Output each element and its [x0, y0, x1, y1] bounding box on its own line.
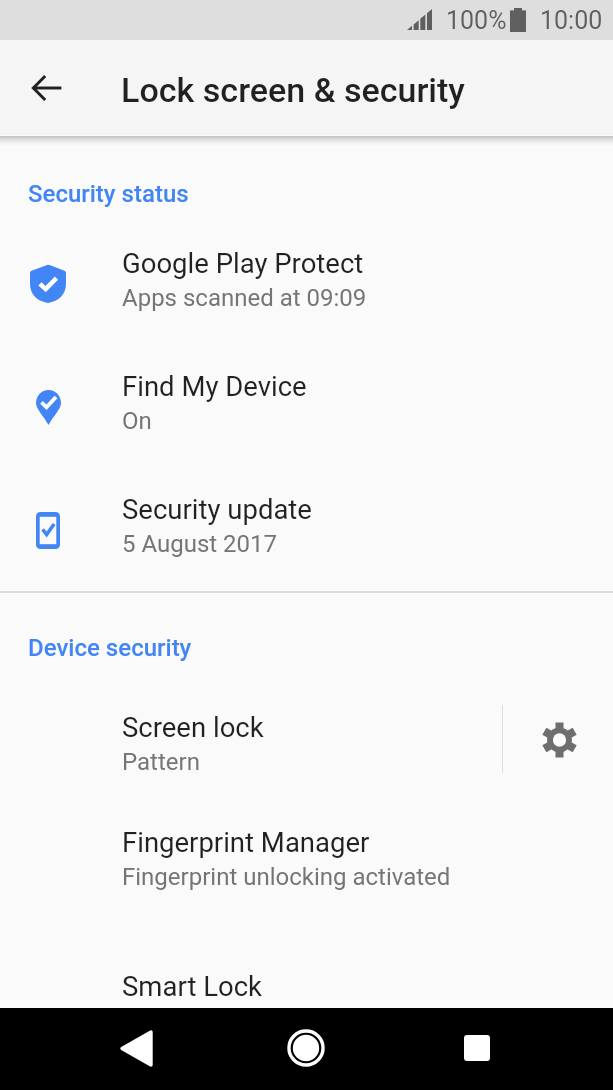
- button[interactable]: Home: [276, 1018, 336, 1078]
- staticText: On: [122, 407, 152, 435]
- button[interactable]: Find My Device: [0, 338, 613, 448]
- staticText: Smart Lock: [122, 970, 263, 1002]
- button[interactable]: Screen lock: [0, 679, 613, 789]
- staticText: Fingerprint unlocking activated: [122, 863, 451, 891]
- staticText: Screen lock: [122, 711, 264, 743]
- staticText: Device security: [28, 634, 192, 662]
- staticText: Google Play Protect: [122, 247, 364, 279]
- staticText: 100%: [446, 6, 507, 35]
- staticText: Security status: [28, 180, 189, 208]
- staticText: Find My Device: [122, 370, 307, 402]
- button[interactable]: Security update: [0, 461, 613, 571]
- staticText: Fingerprint Manager: [122, 826, 370, 858]
- staticText: 10:00: [540, 6, 603, 35]
- button[interactable]: Back: [106, 1018, 166, 1078]
- staticText: Apps scanned at 09:09: [122, 284, 367, 312]
- button[interactable]: Fingerprint Manager: [0, 794, 613, 904]
- staticText: 5 August 2017: [122, 530, 278, 558]
- button[interactable]: Recent apps: [447, 1018, 507, 1078]
- button[interactable]: Navigate up: [18, 59, 76, 117]
- button[interactable]: Google Play Protect: [0, 215, 613, 325]
- staticText: Lock screen & security: [121, 70, 465, 110]
- button[interactable]: Screen lock settings: [505, 684, 613, 796]
- button[interactable]: Smart Lock: [0, 938, 613, 1012]
- staticText: Pattern: [122, 748, 200, 776]
- staticText: Security update: [122, 493, 312, 525]
